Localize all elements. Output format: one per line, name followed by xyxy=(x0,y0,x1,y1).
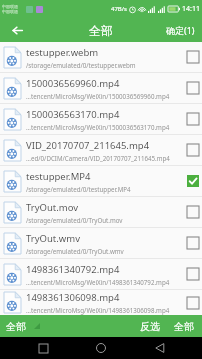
staticText: ...tencent/MicroMsg/WeiXin/1500036569960… xyxy=(26,92,170,100)
button[interactable]: Not selected xyxy=(187,206,199,218)
staticText: 1498361340792.mp4 xyxy=(26,263,120,276)
button[interactable]: 全部 xyxy=(167,315,202,337)
staticText: /storage/emulated/0/testupper.webm xyxy=(26,61,136,69)
staticText: ...ed/0/DCIM/Camera/VID_20170707_211645.… xyxy=(26,154,170,162)
button[interactable]: 1498361340792.mp4 xyxy=(0,259,202,289)
button[interactable]: Selected xyxy=(187,175,199,187)
staticText: 确定(1) xyxy=(166,24,195,36)
button[interactable]: Not selected xyxy=(187,113,199,125)
button[interactable]: Back xyxy=(144,337,176,359)
staticText: 1500036569960.mp4 xyxy=(26,77,120,90)
button[interactable]: testupper.MP4 xyxy=(0,166,202,196)
button[interactable]: TryOut.wmv xyxy=(0,228,202,258)
button[interactable]: Not selected xyxy=(187,297,199,309)
button[interactable]: Not selected xyxy=(187,237,199,249)
button[interactable]: Not selected xyxy=(187,144,199,156)
staticText: /storage/emulated/0/TryOut.wmv xyxy=(26,247,124,255)
staticText: 47B/s xyxy=(111,5,127,13)
staticText: testupper.webm xyxy=(26,46,99,59)
button[interactable]: Recent apps xyxy=(27,337,59,359)
staticText: 中国联通 xyxy=(2,9,18,14)
staticText: ...tencent/MicroMsg/WeiXin/1500036563170… xyxy=(26,123,170,131)
button[interactable]: Not selected xyxy=(187,51,199,63)
button[interactable]: 全部 xyxy=(0,315,46,337)
button[interactable]: VID_20170707_211645.mp4 xyxy=(0,135,202,165)
staticText: /storage/emulated/0/TryOut.mov xyxy=(26,216,123,224)
staticText: 1498361306098.mp4 xyxy=(26,291,120,304)
staticText: 反选 xyxy=(140,320,160,333)
staticText: 全部 xyxy=(174,320,194,333)
button[interactable]: Not selected xyxy=(187,82,199,94)
button[interactable]: Not selected xyxy=(187,268,199,280)
staticText: VID_20170707_211645.mp4 xyxy=(26,139,150,152)
button[interactable]: Back xyxy=(0,18,34,42)
staticText: ...tencent/MicroMsg/WeiXin/1498361340792… xyxy=(26,278,170,286)
staticText: 全部 xyxy=(6,320,26,333)
button[interactable]: testupper.webm xyxy=(0,42,202,72)
staticText: testupper.MP4 xyxy=(26,170,91,183)
button[interactable]: TryOut.mov xyxy=(0,197,202,227)
button[interactable]: 反选 xyxy=(133,315,167,337)
staticText: 1500036563170.mp4 xyxy=(26,108,120,121)
staticText: ...tencent/MicroMsg/WeiXin/1498361306098… xyxy=(26,306,170,314)
staticText: TryOut.mov xyxy=(26,201,79,214)
staticText: 全部 xyxy=(89,23,113,38)
button[interactable]: 1498361306098.mp4 xyxy=(0,290,202,315)
button[interactable]: 1500036569960.mp4 xyxy=(0,73,202,103)
staticText: TryOut.wmv xyxy=(26,232,81,245)
button[interactable]: Home xyxy=(85,337,117,359)
button[interactable]: 确定(1) xyxy=(159,18,202,42)
staticText: /storage/emulated/0/testupper.MP4 xyxy=(26,185,131,193)
staticText: 14:11 xyxy=(182,4,200,14)
button[interactable]: 1500036563170.mp4 xyxy=(0,104,202,134)
staticText: 中国联通 xyxy=(2,4,18,9)
